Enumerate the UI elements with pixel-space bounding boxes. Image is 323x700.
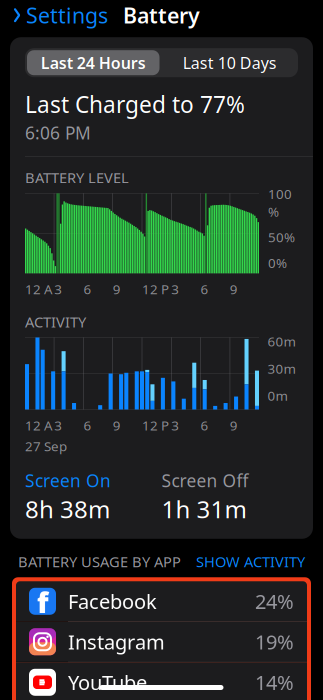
button[interactable]: Settings	[10, 0, 110, 35]
staticText: Screen On	[25, 469, 111, 492]
staticText: 6	[200, 416, 208, 434]
staticText: 50%	[268, 228, 295, 246]
staticText: Battery	[123, 1, 200, 29]
staticText: 9	[230, 280, 238, 298]
staticText: ACTIVITY	[25, 312, 86, 331]
staticText: Settings	[26, 1, 108, 29]
staticText: 8h 38m	[25, 493, 110, 525]
staticText: 19%	[255, 628, 294, 655]
button[interactable]: f	[16, 581, 307, 622]
staticText: 30m	[267, 360, 295, 377]
staticText: SHOW ACTIVITY	[196, 552, 305, 571]
staticText: Last Charged to 77%	[25, 89, 245, 119]
staticText: Instagram	[68, 628, 165, 655]
staticText: Screen Off	[161, 469, 248, 492]
button[interactable]: Instagram	[16, 622, 307, 662]
staticText: 14%	[255, 669, 294, 696]
staticText: 6	[200, 280, 208, 298]
staticText: 12 A	[25, 416, 53, 434]
staticText: 3	[171, 416, 179, 434]
staticText: 27 Sep	[25, 437, 67, 455]
staticText: 0%	[268, 254, 287, 272]
staticText: 24%	[255, 588, 294, 615]
staticText: Facebook	[68, 588, 157, 615]
staticText: 9	[113, 280, 121, 298]
staticText: 9	[230, 416, 238, 434]
staticText: 3	[54, 280, 62, 298]
staticText: 0m	[267, 387, 287, 404]
staticText: 6	[83, 416, 91, 434]
staticText: YouTube	[68, 669, 147, 696]
button[interactable]: YouTube	[16, 662, 307, 700]
staticText: 12 P	[142, 416, 169, 434]
staticText: BATTERY LEVEL	[25, 168, 129, 187]
staticText: 9	[113, 416, 121, 434]
staticText: Last 24 Hours	[41, 52, 146, 73]
staticText: f	[37, 584, 49, 621]
button[interactable]: Last 24 Hours	[25, 48, 161, 77]
staticText: 3	[171, 280, 179, 298]
button[interactable]: Last 10 Days	[161, 48, 298, 77]
staticText: 12 P	[142, 280, 169, 298]
button[interactable]: SHOW ACTIVITY	[196, 552, 305, 571]
staticText: BATTERY USAGE BY APP	[18, 552, 181, 571]
staticText: 6	[83, 280, 91, 298]
staticText: 100%	[268, 185, 292, 220]
staticText: 1h 31m	[161, 493, 246, 525]
staticText: 60m	[267, 332, 295, 350]
staticText: Last 10 Days	[183, 52, 277, 73]
staticText: 6:06 PM	[25, 121, 91, 144]
staticText: 12 A	[25, 280, 53, 298]
staticText: 3	[54, 416, 62, 434]
